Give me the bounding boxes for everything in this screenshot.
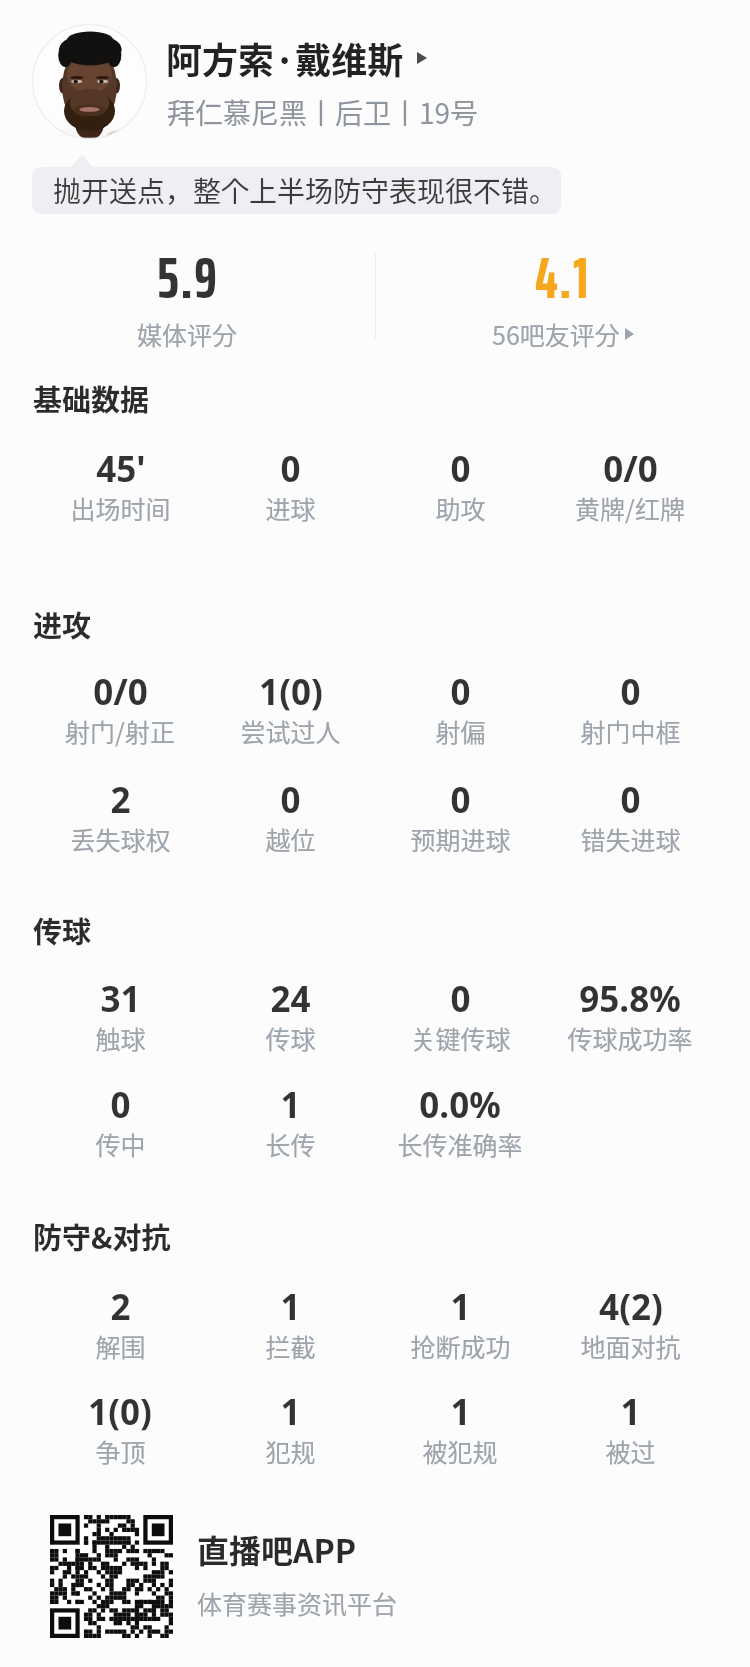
button[interactable]: 4.1 <box>375 232 750 352</box>
staticText: 0/0 <box>93 668 148 713</box>
staticText: 1 <box>450 1388 471 1433</box>
staticText: 关键传球 <box>410 1020 511 1056</box>
staticText: 0 <box>110 1081 131 1126</box>
staticText: 被犯规 <box>422 1433 498 1469</box>
staticText: 56吧友评分 <box>492 316 620 352</box>
staticText: 射门/射正 <box>65 713 175 749</box>
button[interactable]: 阿方索·戴维斯 <box>166 32 427 84</box>
staticText: 45' <box>96 445 146 490</box>
staticText: 0 <box>450 668 471 713</box>
staticText: 黄牌/红牌 <box>575 490 685 526</box>
staticText: 长传 <box>265 1126 316 1162</box>
staticText: 31 <box>100 975 141 1020</box>
staticText: 传球 <box>265 1020 316 1056</box>
staticText: 出场时间 <box>70 490 171 526</box>
staticText: 拦截 <box>265 1328 316 1364</box>
staticText: 1 <box>280 1388 301 1433</box>
staticText: 丢失球权 <box>70 821 171 857</box>
staticText: 防守&对抗 <box>33 1215 171 1257</box>
button[interactable]: 5.9 <box>0 232 375 352</box>
staticText: 95.8% <box>579 975 681 1020</box>
staticText: 1(0) <box>88 1388 152 1433</box>
staticText: 24 <box>270 975 311 1020</box>
staticText: 解围 <box>95 1328 146 1364</box>
staticText: 进攻 <box>33 603 92 645</box>
staticText: 1 <box>620 1388 641 1433</box>
staticText: 0 <box>450 445 471 490</box>
staticText: 拜仁慕尼黑丨后卫丨19号 <box>167 92 479 133</box>
staticText: 地面对抗 <box>580 1328 681 1364</box>
staticText: 助攻 <box>435 490 486 526</box>
staticText: 体育赛事资讯平台 <box>197 1585 398 1621</box>
staticText: 争顶 <box>95 1433 146 1469</box>
staticText: 2 <box>110 1283 131 1328</box>
staticText: 媒体评分 <box>137 316 238 352</box>
staticText: 直播吧APP <box>197 1526 357 1572</box>
staticText: 1 <box>280 1283 301 1328</box>
staticText: 触球 <box>95 1020 146 1056</box>
staticText: 1 <box>280 1081 301 1126</box>
staticText: 0 <box>450 975 471 1020</box>
other: Open player profile <box>417 52 427 64</box>
staticText: 0.0% <box>419 1081 501 1126</box>
staticText: 1 <box>450 1283 471 1328</box>
staticText: 被过 <box>605 1433 656 1469</box>
staticText: 犯规 <box>265 1433 316 1469</box>
staticText: 进球 <box>265 490 316 526</box>
staticText: 0 <box>450 776 471 821</box>
staticText: 5.9 <box>157 232 219 316</box>
staticText: 阿方索·戴维斯 <box>166 32 404 84</box>
staticText: 0 <box>280 445 301 490</box>
staticText: 基础数据 <box>33 377 150 419</box>
staticText: 0 <box>620 668 641 713</box>
staticText: 错失进球 <box>580 821 681 857</box>
staticText: 传中 <box>95 1126 146 1162</box>
staticText: 4(2) <box>599 1283 663 1328</box>
button[interactable]: Player avatar <box>32 24 147 139</box>
staticText: 长传准确率 <box>397 1126 523 1162</box>
staticText: 2 <box>110 776 131 821</box>
staticText: 抛开送点，整个上半场防守表现很不错。 <box>53 170 558 211</box>
staticText: 射门中框 <box>580 713 681 749</box>
staticText: 尝试过人 <box>240 713 341 749</box>
staticText: 越位 <box>265 821 316 857</box>
staticText: 0 <box>280 776 301 821</box>
staticText: 1(0) <box>259 668 323 713</box>
staticText: 0 <box>620 776 641 821</box>
staticText: 射偏 <box>435 713 486 749</box>
staticText: 预期进球 <box>410 821 511 857</box>
staticText: 传球成功率 <box>567 1020 693 1056</box>
button[interactable]: 直播吧APP <box>197 1526 398 1621</box>
staticText: 0/0 <box>603 445 658 490</box>
staticText: 抢断成功 <box>410 1328 511 1364</box>
staticText: 4.1 <box>535 232 590 316</box>
staticText: 传球 <box>33 909 92 951</box>
other: Open fan ratings <box>625 328 634 340</box>
button[interactable]: 抛开送点，整个上半场防守表现很不错。 <box>32 167 561 214</box>
